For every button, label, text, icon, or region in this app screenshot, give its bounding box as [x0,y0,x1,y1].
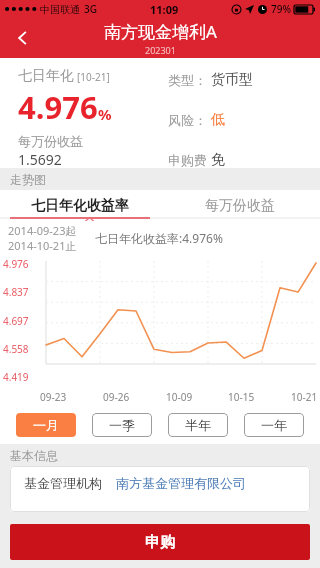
staticText: 4.976 [3,257,29,271]
staticText: 申购 [145,533,175,552]
staticText: 基本信息 [10,448,58,463]
staticText: 七日年化收益率:4.976% [95,230,223,246]
staticText: 09-26 [103,390,130,404]
staticText: 一季 [109,417,135,433]
staticText: [10-21] [77,70,110,84]
staticText: 4.976 [18,86,98,128]
staticText: 南方基金管理有限公司 [116,475,246,491]
staticText: 10-21 [291,390,318,404]
staticText: 申购费 [168,152,207,168]
button[interactable]: 返回 [0,18,46,58]
button[interactable]: 七日年化收益率 [0,190,160,221]
staticText: 4.697 [3,314,29,328]
staticText: 1.5692 [18,150,62,168]
staticText: 南方现金增利A [104,20,217,43]
button[interactable]: 基金管理机构 [10,466,310,512]
staticText: 七日年化收益率 [31,197,129,215]
staticText: 09-23 [40,390,67,404]
button[interactable]: 申购 [10,524,310,560]
staticText: 11:09 [150,2,179,17]
staticText: 货币型 [211,71,253,89]
button[interactable]: 一年 [244,413,304,437]
staticText: % [98,104,112,124]
staticText: 3G [84,2,97,16]
staticText: 低 [211,111,225,129]
staticText: 10-09 [166,390,193,404]
staticText: 中国联通 [40,3,80,16]
staticText: 202301 [145,44,176,56]
staticText: 基金管理机构 [24,475,102,491]
staticText: 79% [271,2,291,16]
staticText: 2014-09-23起 [8,223,77,238]
staticText: 免 [211,151,225,168]
button[interactable]: 一季 [92,413,152,437]
staticText: 一月 [33,417,59,433]
staticText: 半年 [185,417,211,433]
button[interactable]: 一月 [16,413,76,437]
staticText: 走势图 [10,172,46,187]
staticText: 4.837 [3,285,29,299]
staticText: 4.419 [3,370,29,384]
staticText: 2014-10-21止 [8,238,77,251]
staticText: 风险： [168,112,207,128]
staticText: 每万份收益 [205,197,275,215]
staticText: 一年 [261,417,287,433]
staticText: 七日年化 [18,67,74,85]
staticText: 10-15 [228,390,255,404]
button[interactable]: 半年 [168,413,228,437]
staticText: 类型： [168,72,207,88]
button[interactable]: 每万份收益 [160,190,320,221]
staticText: 每万份收益 [18,133,83,149]
staticText: 4.558 [3,342,29,356]
